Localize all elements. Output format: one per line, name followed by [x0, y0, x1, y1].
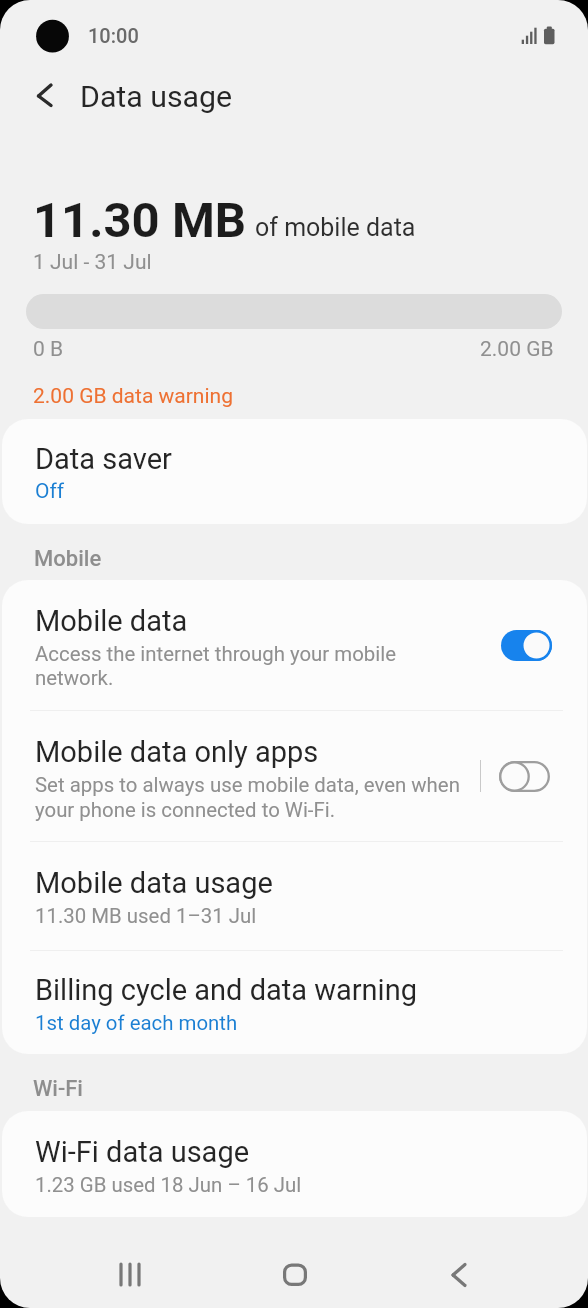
button[interactable]: Home — [262, 1242, 328, 1306]
staticText: 2.00 GB — [480, 337, 554, 362]
button[interactable]: Wi-Fi data usage — [2, 1111, 587, 1217]
button[interactable]: Recent apps — [98, 1242, 164, 1306]
staticText: 1 Jul - 31 Jul — [33, 250, 152, 275]
staticText: Set apps to always use mobile data, even… — [35, 773, 460, 797]
button[interactable]: Mobile data toggle — [501, 630, 552, 661]
staticText: of mobile data — [255, 213, 416, 242]
staticText: network. — [35, 666, 114, 690]
staticText: Wi-Fi data usage — [35, 1135, 250, 1169]
staticText: Wi-Fi — [33, 1076, 83, 1102]
button[interactable]: Data saver — [2, 419, 587, 524]
staticText: Mobile data — [35, 604, 188, 638]
staticText: Data saver — [35, 442, 172, 476]
staticText: 10:00 — [88, 24, 139, 47]
staticText: Billing cycle and data warning — [35, 973, 417, 1007]
button[interactable]: Mobile data only apps toggle — [499, 761, 550, 792]
staticText: Off — [35, 479, 65, 504]
staticText: 1st day of each month — [35, 1011, 238, 1035]
staticText: Mobile data only apps — [35, 735, 319, 769]
staticText: 1.23 GB used 18 Jun – 16 Jul — [35, 1173, 302, 1197]
button[interactable]: Back — [425, 1242, 491, 1306]
staticText: your phone is connected to Wi-Fi. — [35, 798, 336, 822]
staticText: 2.00 GB data warning — [33, 384, 233, 409]
button[interactable]: Mobile data — [2, 580, 587, 1054]
staticText: Mobile — [34, 546, 102, 572]
staticText: 11.30 MB — [33, 192, 247, 249]
staticText: Data usage — [80, 79, 233, 115]
button[interactable]: Navigate up — [14, 65, 76, 127]
staticText: Access the internet through your mobile — [35, 642, 396, 666]
staticText: Mobile data usage — [35, 866, 273, 900]
staticText: 11.30 MB used 1–31 Jul — [35, 904, 257, 928]
staticText: 0 B — [33, 337, 64, 362]
